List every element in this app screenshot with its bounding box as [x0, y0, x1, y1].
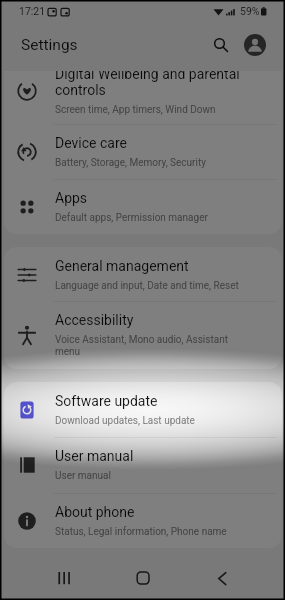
button[interactable]: User manual: [4, 437, 282, 492]
staticText: Digital Wellbeing and parental controls: [55, 71, 247, 98]
button[interactable]: Apps: [4, 179, 282, 234]
staticText: Apps: [55, 190, 88, 206]
staticText: Status, Legal information, Phone name: [55, 526, 227, 538]
button[interactable]: General management: [4, 247, 282, 302]
staticText: Screen time, App timers, Wind Down: [55, 104, 216, 116]
staticText: General management: [55, 258, 189, 274]
staticText: Battery, Storage, Memory, Security: [55, 157, 206, 169]
button[interactable]: Device care: [4, 124, 282, 179]
staticText: Download updates, Last update: [55, 415, 195, 427]
staticText: Default apps, Permission manager: [55, 212, 208, 224]
staticText: Settings: [21, 36, 78, 54]
button[interactable]: About phone: [4, 493, 282, 548]
button[interactable]: Back: [210, 566, 234, 590]
button[interactable]: Recents: [52, 566, 76, 590]
staticText: User manual: [55, 470, 111, 482]
staticText: Accessibility: [55, 312, 134, 328]
staticText: Voice Assistant, Mono audio, Assistant m…: [55, 334, 247, 358]
staticText: Software update: [55, 393, 158, 409]
staticText: 59%: [240, 5, 260, 17]
staticText: User manual: [55, 448, 134, 464]
button[interactable]: Search: [208, 33, 231, 56]
button[interactable]: Software update: [4, 382, 282, 437]
staticText: About phone: [55, 504, 135, 520]
button[interactable]: Accessibility: [4, 301, 282, 368]
button[interactable]: Digital Wellbeing and parental controls: [4, 71, 282, 124]
button[interactable]: Home: [131, 566, 155, 590]
button[interactable]: Account: [244, 34, 266, 56]
staticText: Device care: [55, 135, 127, 151]
staticText: Language and input, Date and time, Reset: [55, 280, 239, 292]
staticText: 17:21: [19, 5, 46, 17]
